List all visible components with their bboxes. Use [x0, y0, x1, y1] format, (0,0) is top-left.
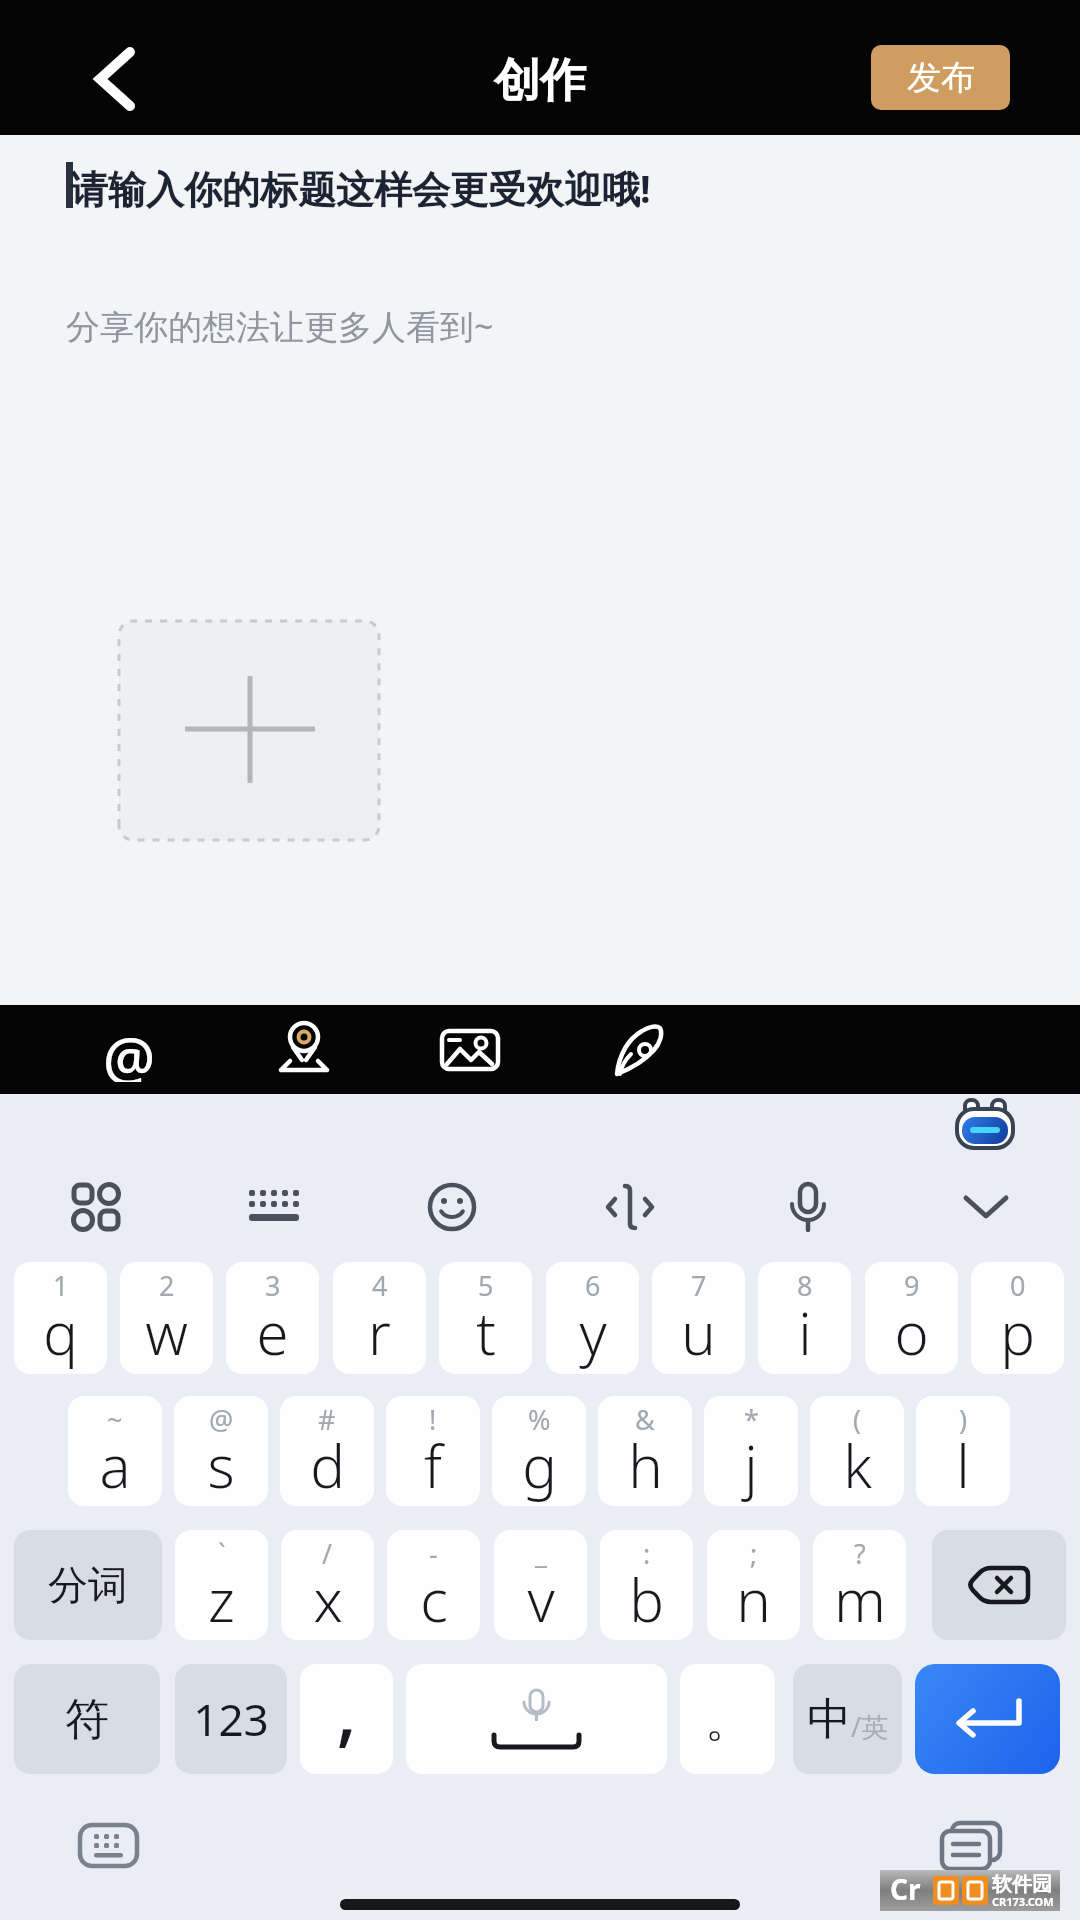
button[interactable]: 符: [14, 1664, 160, 1774]
button[interactable]: %: [492, 1396, 586, 1506]
staticText: ,: [336, 1664, 357, 1761]
button[interactable]: 分词: [14, 1530, 162, 1640]
staticText: 0: [1010, 1267, 1026, 1304]
staticText: h: [628, 1426, 663, 1505]
button[interactable]: /: [281, 1530, 374, 1640]
staticText: -: [429, 1535, 438, 1572]
staticText: r: [368, 1293, 391, 1372]
staticText: x: [313, 1560, 343, 1639]
staticText: j: [744, 1426, 758, 1505]
button[interactable]: #: [280, 1396, 374, 1506]
staticText: 。: [705, 1692, 751, 1750]
button[interactable]: 发布: [871, 45, 1010, 110]
button[interactable]: ): [916, 1396, 1010, 1506]
button[interactable]: 1: [14, 1262, 107, 1374]
staticText: q: [43, 1293, 78, 1372]
button[interactable]: [78, 1823, 139, 1868]
button[interactable]: 。: [680, 1664, 775, 1774]
button[interactable]: [941, 1822, 1003, 1870]
button[interactable]: ?: [813, 1530, 906, 1640]
staticText: v: [527, 1560, 555, 1639]
staticText: 8: [797, 1267, 813, 1304]
staticText: y: [579, 1293, 607, 1372]
staticText: 请输入你的标题这样会更受欢迎哦!: [70, 162, 651, 214]
button[interactable]: *: [704, 1396, 798, 1506]
staticText: p: [1000, 1293, 1035, 1372]
button[interactable]: !: [386, 1396, 480, 1506]
staticText: *: [744, 1401, 759, 1438]
staticText: 中: [807, 1692, 851, 1747]
staticText: 分词: [48, 1560, 128, 1610]
staticText: ): [959, 1401, 968, 1438]
staticText: /英: [851, 1708, 889, 1745]
button[interactable]: ,: [300, 1664, 393, 1774]
button[interactable]: 分享你的想法让更多人看到~: [66, 303, 494, 349]
staticText: :: [643, 1535, 651, 1572]
button[interactable]: -: [387, 1530, 480, 1640]
button[interactable]: :: [600, 1530, 693, 1640]
button[interactable]: [932, 1530, 1066, 1640]
staticText: k: [843, 1426, 872, 1505]
staticText: 2: [159, 1267, 175, 1304]
button[interactable]: 中: [793, 1664, 902, 1774]
staticText: 5: [478, 1267, 494, 1304]
staticText: 1: [53, 1267, 69, 1304]
staticText: @: [103, 1018, 156, 1082]
staticText: Cr: [890, 1870, 921, 1908]
button[interactable]: 8: [758, 1262, 851, 1374]
staticText: m: [834, 1560, 886, 1639]
staticText: 123: [193, 1689, 269, 1749]
button[interactable]: 3: [226, 1262, 319, 1374]
button[interactable]: [71, 1182, 121, 1232]
staticText: g: [522, 1426, 557, 1505]
button[interactable]: [605, 1182, 655, 1232]
button[interactable]: [276, 1022, 332, 1078]
staticText: w: [145, 1293, 188, 1372]
staticText: s: [207, 1426, 235, 1505]
button[interactable]: _: [494, 1530, 587, 1640]
staticText: l: [956, 1426, 970, 1505]
button[interactable]: @: [174, 1396, 268, 1506]
button[interactable]: 0: [971, 1262, 1064, 1374]
button[interactable]: [246, 1188, 302, 1228]
button[interactable]: [406, 1664, 667, 1774]
button[interactable]: [427, 1182, 477, 1232]
button[interactable]: ~: [68, 1396, 162, 1506]
button[interactable]: 123: [175, 1664, 287, 1774]
staticText: CR173.COM: [992, 1894, 1054, 1909]
button[interactable]: ;: [707, 1530, 800, 1640]
staticText: 软件园: [992, 1872, 1052, 1897]
staticText: 3: [265, 1267, 281, 1304]
button[interactable]: 2: [120, 1262, 213, 1374]
staticText: /: [322, 1535, 333, 1572]
button[interactable]: &: [598, 1396, 692, 1506]
button[interactable]: [955, 1100, 1015, 1150]
button[interactable]: (: [810, 1396, 904, 1506]
staticText: f: [424, 1426, 442, 1505]
staticText: ~: [107, 1401, 123, 1438]
button[interactable]: [440, 1029, 500, 1071]
button[interactable]: [612, 1023, 668, 1077]
staticText: ;: [750, 1535, 758, 1572]
button[interactable]: 请输入你的标题这样会更受欢迎哦!: [64, 160, 1080, 220]
button[interactable]: @: [97, 1018, 161, 1082]
button[interactable]: 4: [333, 1262, 426, 1374]
button[interactable]: 7: [652, 1262, 745, 1374]
button[interactable]: 5: [439, 1262, 532, 1374]
staticText: u: [681, 1293, 716, 1372]
staticText: b: [629, 1560, 664, 1639]
button[interactable]: 9: [865, 1262, 958, 1374]
staticText: n: [736, 1560, 771, 1639]
staticText: i: [798, 1293, 812, 1372]
button[interactable]: [961, 1190, 1011, 1226]
button[interactable]: [80, 40, 152, 112]
staticText: 6: [585, 1267, 601, 1304]
button[interactable]: [784, 1182, 832, 1234]
staticText: 7: [691, 1267, 707, 1304]
button[interactable]: [915, 1664, 1060, 1774]
staticText: @: [209, 1401, 234, 1438]
staticText: 符: [65, 1692, 109, 1747]
button[interactable]: [117, 619, 381, 842]
button[interactable]: `: [175, 1530, 268, 1640]
button[interactable]: 6: [546, 1262, 639, 1374]
